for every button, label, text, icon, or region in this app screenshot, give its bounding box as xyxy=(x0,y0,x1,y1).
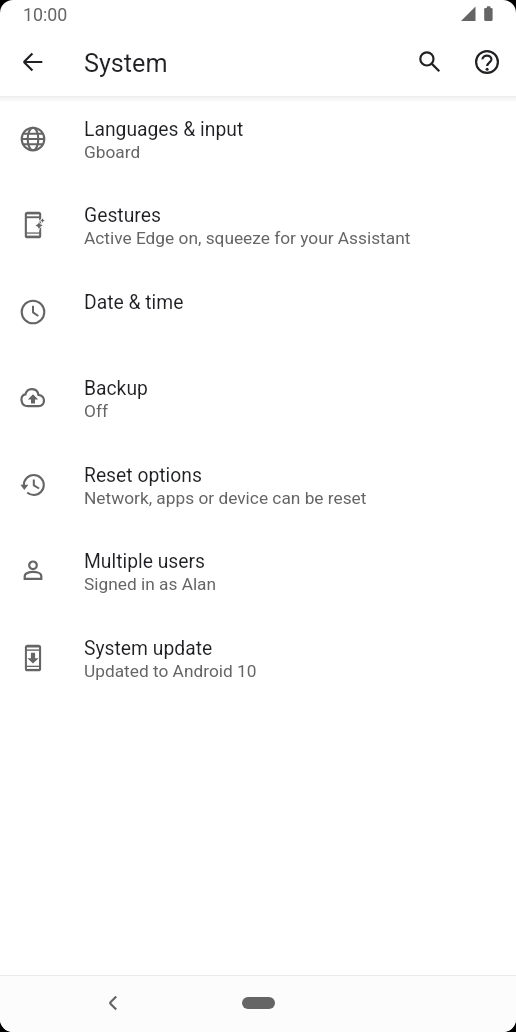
button[interactable]: Date & time xyxy=(0,269,516,355)
staticText: System update xyxy=(84,637,213,660)
button[interactable]: Backup xyxy=(0,355,516,441)
button[interactable]: System update xyxy=(0,615,516,701)
staticText: Gestures xyxy=(84,204,161,227)
button[interactable]: Languages & input xyxy=(0,96,516,182)
button[interactable]: Reset options xyxy=(0,442,516,528)
staticText: Signed in as Alan xyxy=(84,574,217,594)
button[interactable]: Multiple users xyxy=(0,528,516,614)
button[interactable]: Search xyxy=(406,38,454,86)
button[interactable]: Help xyxy=(463,38,511,86)
button[interactable]: Gestures xyxy=(0,182,516,268)
button[interactable]: Back xyxy=(89,979,137,1027)
button[interactable]: Home xyxy=(242,997,275,1009)
staticText: Off xyxy=(84,401,108,421)
staticText: Updated to Android 10 xyxy=(84,661,257,681)
staticText: Gboard xyxy=(84,142,141,162)
staticText: Languages & input xyxy=(84,118,244,141)
staticText: Network, apps or device can be reset xyxy=(84,488,367,508)
staticText: 10:00 xyxy=(23,4,68,25)
staticText: Active Edge on, squeeze for your Assista… xyxy=(84,228,411,248)
staticText: Reset options xyxy=(84,464,202,487)
staticText: System xyxy=(84,49,168,79)
staticText: Multiple users xyxy=(84,550,206,573)
button[interactable]: Back xyxy=(9,38,57,86)
staticText: Date & time xyxy=(84,291,184,314)
staticText: Backup xyxy=(84,377,148,400)
